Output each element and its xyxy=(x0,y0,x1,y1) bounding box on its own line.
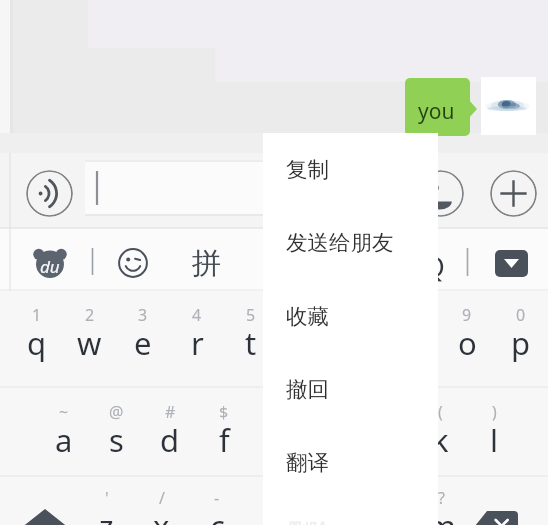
button[interactable]: 复制 xyxy=(263,133,438,206)
staticText: $ xyxy=(219,401,229,423)
button[interactable]: ' xyxy=(79,477,134,525)
staticText: 翻译 xyxy=(286,449,329,476)
button[interactable]: 翻译 xyxy=(263,426,438,499)
staticText: e xyxy=(134,322,152,364)
staticText: 收藏 xyxy=(286,303,329,330)
button[interactable]: Input method xyxy=(33,248,67,278)
staticText: h xyxy=(322,419,342,461)
staticText: 4 xyxy=(192,304,202,326)
staticText: r xyxy=(191,322,204,364)
staticText: x xyxy=(153,505,170,525)
staticText: p xyxy=(511,322,531,364)
staticText: m xyxy=(427,505,456,525)
button[interactable]: $ xyxy=(197,388,251,476)
staticText: 发送给朋友 xyxy=(286,229,394,256)
staticText: 复制 xyxy=(286,156,329,183)
staticText: / xyxy=(159,487,165,509)
button[interactable]: 5 xyxy=(224,291,278,387)
button[interactable] xyxy=(85,160,421,216)
staticText: Q xyxy=(423,247,445,285)
button[interactable]: & xyxy=(305,388,359,476)
button[interactable]: % xyxy=(251,388,305,476)
staticText: ) xyxy=(492,401,497,423)
staticText: 0 xyxy=(516,304,526,326)
button[interactable]: ~ xyxy=(37,388,90,476)
staticText: 5 xyxy=(246,304,256,326)
staticText: 6 xyxy=(300,304,310,326)
button[interactable]: ? xyxy=(413,477,469,525)
staticText: 1 xyxy=(32,304,42,326)
staticText: 撤回 xyxy=(286,376,329,403)
button[interactable]: QQ expressions xyxy=(423,247,445,285)
button[interactable]: ) xyxy=(467,388,521,476)
staticText: 拼 xyxy=(192,245,221,282)
staticText: a xyxy=(55,419,73,461)
button[interactable]: : xyxy=(245,477,301,525)
button[interactable]: 2 xyxy=(63,291,116,387)
button[interactable]: 3 xyxy=(116,291,170,387)
staticText: ? xyxy=(438,487,445,509)
staticText: c xyxy=(210,505,225,525)
button[interactable]: - xyxy=(189,477,245,525)
button[interactable]: More options xyxy=(490,170,537,217)
button[interactable]: Hide keyboard xyxy=(495,250,528,277)
button[interactable]: 1 xyxy=(10,291,63,387)
button[interactable]: you xyxy=(405,78,470,136)
staticText: ' xyxy=(105,487,109,509)
button[interactable]: ( xyxy=(413,388,467,476)
button[interactable]: / xyxy=(134,477,189,525)
button[interactable]: 4 xyxy=(170,291,224,387)
staticText: k xyxy=(432,419,449,461)
staticText: - xyxy=(214,487,220,509)
staticText: z xyxy=(99,505,114,525)
staticText: l xyxy=(490,419,498,461)
staticText: w xyxy=(77,322,102,364)
button[interactable]: Shift xyxy=(0,477,79,525)
button[interactable]: Backspace xyxy=(469,477,548,525)
staticText: d xyxy=(160,419,180,461)
button[interactable]: 6 xyxy=(278,291,332,387)
button[interactable]: 9 xyxy=(440,291,494,387)
staticText: y xyxy=(297,322,313,364)
button[interactable]: Pinyin mode xyxy=(192,245,221,282)
staticText: # xyxy=(165,401,176,423)
button[interactable]: # xyxy=(143,388,197,476)
staticText: ( xyxy=(438,401,443,423)
staticText: o xyxy=(458,322,477,364)
button[interactable]: @ xyxy=(90,388,143,476)
staticText: 2 xyxy=(85,304,95,326)
button[interactable]: Voice input xyxy=(26,170,73,217)
staticText: t xyxy=(245,322,257,364)
staticText: @ xyxy=(109,401,124,423)
button[interactable]: 发送给朋友 xyxy=(263,206,438,279)
staticText: you xyxy=(418,97,455,126)
staticText: s xyxy=(109,419,124,461)
button[interactable]: 撤回 xyxy=(263,353,438,426)
button[interactable]: 收藏 xyxy=(263,280,438,353)
staticText: ~ xyxy=(59,401,69,423)
button[interactable]: 0 xyxy=(494,291,548,387)
button[interactable]: Emoticons xyxy=(118,248,148,278)
staticText: 9 xyxy=(462,304,472,326)
button[interactable]: Emoji xyxy=(417,170,464,217)
staticText: f xyxy=(219,419,230,461)
